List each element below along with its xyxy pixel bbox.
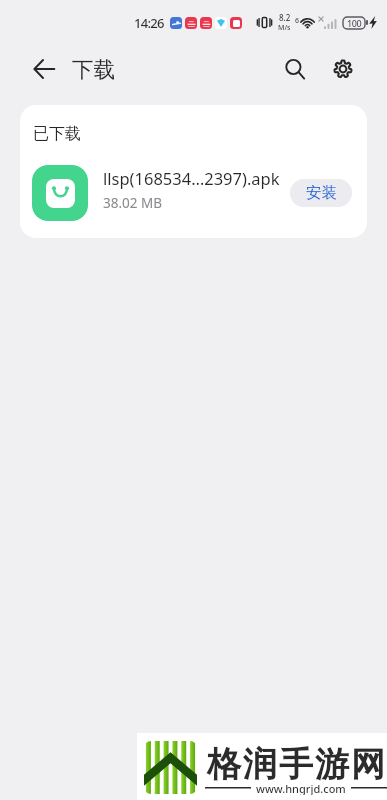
staticText: llsp(168534…2397).apk <box>103 167 280 189</box>
staticText: 已下载 <box>33 124 81 144</box>
staticText: 格润手游网 <box>206 743 386 786</box>
staticText: www.hngrjd.com <box>256 781 346 795</box>
staticText: 100 <box>347 17 362 29</box>
button[interactable]: llsp(168534…2397).apk <box>32 165 352 221</box>
staticText: 安装 <box>306 183 337 203</box>
button[interactable]: Settings <box>326 52 360 86</box>
staticText: M/s <box>278 23 291 33</box>
button[interactable]: Back <box>24 49 64 89</box>
staticText: 14:26 <box>134 14 164 32</box>
staticText: 下载 <box>72 56 115 83</box>
staticText: 8.2 <box>279 12 291 23</box>
button[interactable]: 安装 <box>290 179 352 207</box>
staticText: 6 <box>295 16 300 26</box>
staticText: 38.02 MB <box>103 194 163 212</box>
button[interactable]: Search <box>278 52 312 86</box>
